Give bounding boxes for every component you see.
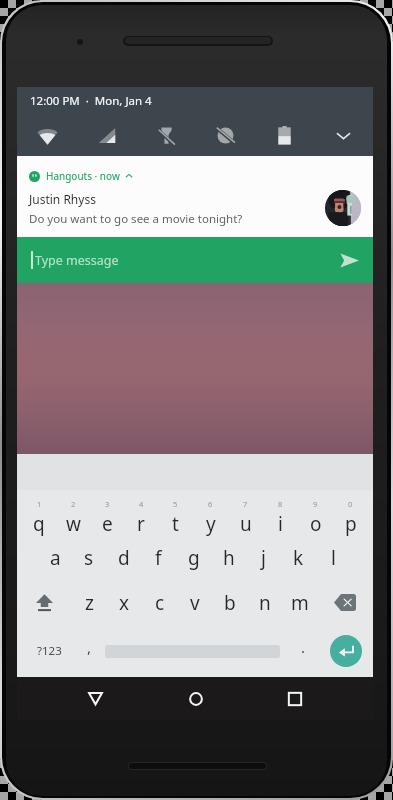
button[interactable]: 7 bbox=[228, 490, 263, 535]
button[interactable]: Shift bbox=[17, 580, 72, 625]
staticText: z bbox=[85, 590, 94, 616]
staticText: b bbox=[224, 590, 236, 616]
button[interactable]: g bbox=[176, 535, 211, 580]
staticText: x bbox=[119, 590, 130, 616]
staticText: Justin Rhyss bbox=[29, 191, 96, 207]
staticText: t bbox=[172, 511, 179, 537]
staticText: q bbox=[33, 511, 45, 537]
button[interactable]: Back bbox=[74, 677, 117, 720]
staticText: v bbox=[190, 590, 200, 616]
button[interactable]: Contact photo bbox=[325, 190, 361, 226]
button[interactable]: . bbox=[288, 625, 318, 677]
button[interactable]: 8 bbox=[263, 490, 298, 535]
staticText: . bbox=[301, 637, 306, 657]
staticText: d bbox=[118, 545, 130, 571]
staticText: h bbox=[223, 545, 235, 571]
staticText: y bbox=[206, 511, 216, 537]
button[interactable]: Home bbox=[174, 677, 217, 720]
button[interactable]: Mobile signal bbox=[77, 115, 137, 156]
button[interactable]: 0 bbox=[333, 490, 368, 535]
button[interactable]: 4 bbox=[124, 490, 158, 535]
button[interactable]: 6 bbox=[193, 490, 228, 535]
button[interactable]: 1 bbox=[22, 490, 56, 535]
staticText: r bbox=[137, 511, 145, 537]
button[interactable]: h bbox=[211, 535, 246, 580]
button[interactable]: Backspace bbox=[317, 580, 373, 625]
staticText: Type message bbox=[35, 252, 340, 269]
staticText: Hangouts · now bbox=[46, 169, 120, 183]
staticText: p bbox=[345, 511, 357, 537]
staticText: g bbox=[188, 545, 200, 571]
button[interactable]: 3 bbox=[90, 490, 124, 535]
button[interactable]: 9 bbox=[298, 490, 333, 535]
button[interactable]: Expand quick settings bbox=[314, 115, 373, 156]
staticText: , bbox=[87, 637, 92, 657]
button[interactable]: f bbox=[141, 535, 176, 580]
button[interactable]: v bbox=[177, 580, 212, 625]
staticText: f bbox=[155, 545, 162, 571]
staticText: 8 bbox=[278, 499, 283, 509]
button[interactable]: k bbox=[281, 535, 316, 580]
staticText: 12:00 PM · Mon, Jan 4 bbox=[30, 93, 152, 109]
staticText: 6 bbox=[208, 499, 213, 509]
staticText: 7 bbox=[243, 499, 248, 509]
staticText: w bbox=[66, 511, 81, 537]
staticText: ?123 bbox=[37, 643, 62, 659]
button[interactable]: j bbox=[246, 535, 281, 580]
staticText: e bbox=[102, 511, 113, 537]
staticText: Do you want to go see a movie tonight? bbox=[29, 211, 243, 227]
button[interactable]: 5 bbox=[158, 490, 193, 535]
button[interactable]: Wi-Fi bbox=[17, 115, 77, 156]
button[interactable]: n bbox=[247, 580, 282, 625]
button[interactable]: ?123 bbox=[17, 625, 81, 677]
staticText: 3 bbox=[105, 499, 110, 509]
staticText: 9 bbox=[313, 499, 318, 509]
button[interactable]: d bbox=[106, 535, 141, 580]
button[interactable]: z bbox=[72, 580, 107, 625]
staticText: l bbox=[331, 545, 336, 571]
button[interactable]: Flashlight bbox=[137, 115, 196, 156]
button[interactable]: Battery bbox=[255, 115, 314, 156]
button[interactable]: a bbox=[38, 535, 72, 580]
staticText: u bbox=[240, 511, 252, 537]
button[interactable]: l bbox=[316, 535, 351, 580]
button[interactable]: c bbox=[142, 580, 177, 625]
staticText: 5 bbox=[173, 499, 178, 509]
staticText: n bbox=[259, 590, 271, 616]
staticText: 4 bbox=[139, 499, 144, 509]
button[interactable]: b bbox=[212, 580, 247, 625]
staticText: a bbox=[50, 545, 61, 571]
button[interactable]: Recent apps bbox=[273, 677, 316, 720]
button[interactable]: , bbox=[81, 625, 97, 677]
staticText: c bbox=[155, 590, 165, 616]
button[interactable]: Auto rotate bbox=[196, 115, 255, 156]
staticText: s bbox=[84, 545, 94, 571]
button[interactable]: 2 bbox=[56, 490, 90, 535]
button[interactable]: x bbox=[107, 580, 142, 625]
button[interactable]: s bbox=[72, 535, 106, 580]
staticText: o bbox=[310, 511, 322, 537]
staticText: i bbox=[278, 511, 283, 537]
button[interactable]: m bbox=[282, 580, 317, 625]
staticText: 0 bbox=[348, 499, 353, 509]
button[interactable]: Enter bbox=[318, 625, 373, 677]
button[interactable]: Send bbox=[340, 253, 359, 268]
staticText: m bbox=[291, 590, 309, 616]
staticText: j bbox=[261, 545, 266, 571]
staticText: 2 bbox=[71, 499, 76, 509]
button[interactable]: Space bbox=[97, 625, 288, 677]
staticText: 1 bbox=[37, 499, 42, 509]
staticText: k bbox=[293, 545, 304, 571]
